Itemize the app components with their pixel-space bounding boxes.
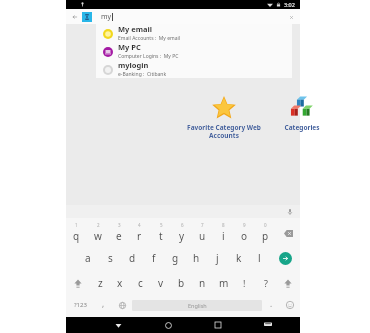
staticText: r [137,229,142,243]
button[interactable]: Search [270,245,300,271]
staticText: q [73,229,80,243]
staticText: Categories [267,123,337,132]
staticText: c [138,276,143,290]
staticText: s [108,251,113,265]
button[interactable]: Recent apps [211,318,225,332]
button[interactable]: Backspace [276,221,300,245]
button[interactable]: s [99,245,121,271]
button[interactable]: d [121,245,143,271]
button[interactable]: ? [255,271,276,295]
staticText: v [158,276,164,290]
staticText: 0 [264,222,267,228]
button[interactable]: 3 [108,221,129,245]
button[interactable]: 0 [255,221,276,245]
button[interactable]: ! [234,271,255,295]
staticText: ! [243,277,246,289]
button[interactable]: My PC [96,42,292,60]
staticText: My email [118,24,153,34]
button[interactable]: 8 [213,221,234,245]
staticText: d [129,251,136,265]
staticText: 8 [222,222,225,228]
button[interactable]: h [186,245,207,271]
button[interactable]: Back [70,12,80,22]
button[interactable]: Home [161,318,175,332]
button[interactable]: 6 [171,221,192,245]
button[interactable]: x [110,271,130,295]
button[interactable]: j [207,245,228,271]
staticText: j [216,251,219,265]
button[interactable]: g [165,245,186,271]
button[interactable]: 5 [150,221,171,245]
staticText: k [236,251,242,265]
staticText: t [159,229,163,243]
button[interactable]: c [130,271,150,295]
button[interactable]: v [150,271,171,295]
staticText: 9 [243,222,246,228]
staticText: 4 [138,222,141,228]
staticText: Computer Logins : My PC [118,53,179,60]
staticText: ?123 [74,301,87,309]
button[interactable]: 1 [66,221,87,245]
button[interactable]: a [77,245,99,271]
staticText: p [262,229,269,243]
staticText: f [152,251,156,265]
button[interactable]: ?123 [66,295,94,315]
staticText: a [85,251,91,265]
staticText: , [102,298,105,309]
staticText: o [241,229,248,243]
staticText: b [178,276,185,290]
staticText: y [179,229,185,243]
staticText: English [188,302,207,309]
button[interactable]: Emoji [280,295,300,315]
button[interactable]: 4 [129,221,150,245]
staticText: . [270,298,273,309]
button[interactable]: k [228,245,249,271]
staticText: i [222,229,225,243]
button[interactable]: n [192,271,213,295]
button[interactable]: Change keyboard [112,295,132,315]
button[interactable]: b [171,271,192,295]
button[interactable]: Shift [66,271,90,295]
staticText: 5 [160,222,163,228]
button[interactable]: 7 [192,221,213,245]
button[interactable]: Back [111,318,125,332]
staticText: 1 [75,222,78,228]
staticText: l [258,251,261,265]
staticText: ? [264,277,268,289]
staticText: h [193,251,200,265]
button[interactable]: Shift [276,271,300,295]
button[interactable]: Back [66,9,300,24]
staticText: Favorite Category Web Accounts [179,123,269,140]
button[interactable]: f [143,245,165,271]
staticText: My PC [118,42,141,52]
staticText: 3 [118,222,121,228]
button[interactable]: English [132,300,262,311]
button[interactable]: z [90,271,110,295]
button[interactable]: Categories [267,95,337,132]
staticText: my [101,12,112,22]
staticText: e [116,229,122,243]
button[interactable]: Hide keyboard [261,318,275,332]
button[interactable]: App icon [82,12,92,22]
button[interactable]: 9 [234,221,255,245]
staticText: m [219,276,229,290]
button[interactable]: l [249,245,270,271]
button[interactable]: Clear search [286,12,296,22]
button[interactable]: m [213,271,234,295]
button[interactable]: 2 [87,221,108,245]
button[interactable]: mylogin [96,60,292,78]
staticText: e-Banking : Citibank [118,71,167,78]
button[interactable]: Favorite Category Web Accounts [179,95,269,140]
staticText: x [117,276,123,290]
staticText: 3:02 [284,1,295,8]
staticText: g [172,251,179,265]
staticText: 2 [97,222,100,228]
staticText: z [98,276,103,290]
staticText: mylogin [118,60,149,70]
button[interactable]: Comma [94,295,112,315]
staticText: Email Accounts : My email [118,35,181,42]
staticText: u [199,229,206,243]
button[interactable]: Period [262,295,280,315]
button[interactable]: My email [96,24,292,42]
button[interactable]: Voice input [284,206,296,218]
